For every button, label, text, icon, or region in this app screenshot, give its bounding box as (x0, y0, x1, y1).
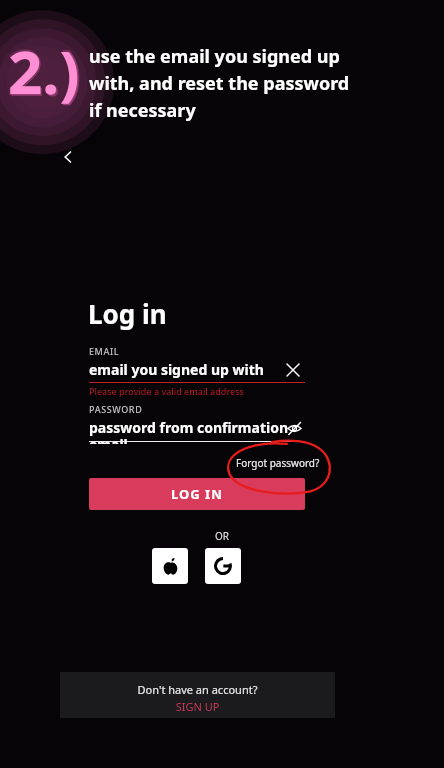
staticText: Please provide a valid email address (89, 385, 244, 397)
button[interactable]: password from confirmation email (89, 415, 305, 441)
staticText: password from confirmation email (89, 418, 305, 444)
staticText: use the email you signed up with, and re… (89, 44, 434, 122)
staticText: email you signed up with (89, 360, 264, 379)
button[interactable]: Back (52, 141, 84, 173)
button[interactable]: Sign in with Apple (152, 548, 188, 584)
staticText: 2.) (8, 30, 80, 112)
staticText: PASSWORD (89, 403, 143, 415)
button[interactable]: email you signed up with (89, 357, 305, 383)
button[interactable]: Forgot password? (232, 453, 324, 473)
staticText: Don't have an account? (60, 682, 335, 697)
staticText: 2.) (7, 29, 81, 113)
button[interactable]: Show password (283, 417, 305, 439)
staticText: 2.) (9, 31, 82, 114)
staticText: EMAIL (89, 345, 120, 357)
staticText: OR (0, 529, 444, 543)
staticText: SIGN UP (60, 699, 335, 714)
button[interactable]: Clear email (281, 358, 305, 382)
staticText: LOG IN (171, 485, 223, 503)
button[interactable]: Sign in with Google (205, 548, 241, 584)
button[interactable]: Don't have an account? (60, 672, 335, 718)
staticText: Log in (88, 296, 167, 331)
staticText: Forgot password? (236, 456, 320, 470)
button[interactable]: LOG IN (89, 478, 305, 510)
